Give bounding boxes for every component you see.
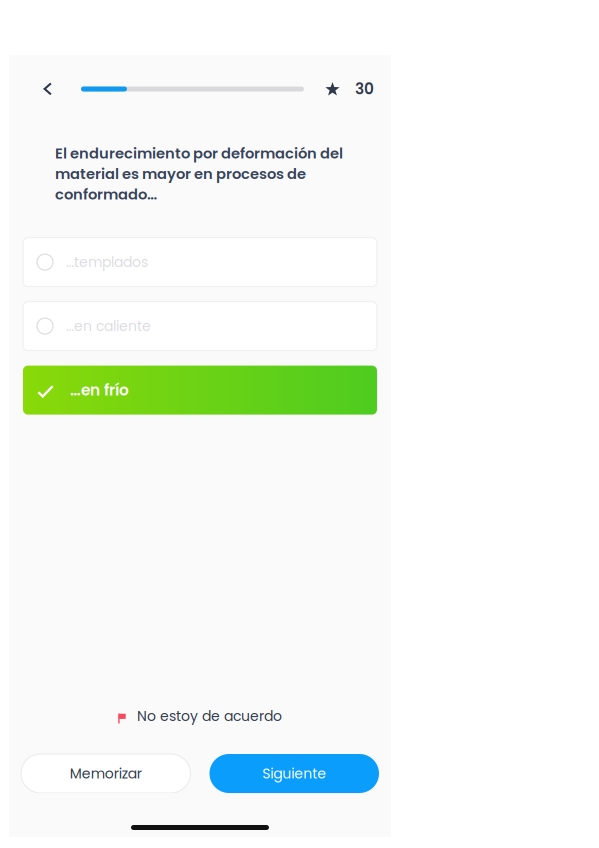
button[interactable]: Back bbox=[35, 76, 61, 102]
button[interactable]: …en caliente bbox=[23, 302, 377, 351]
button[interactable]: Memorizar bbox=[21, 754, 190, 793]
staticText: Siguiente bbox=[262, 764, 326, 783]
staticText: El endurecimiento por deformación del ma… bbox=[55, 143, 343, 205]
staticText: …en frío bbox=[70, 379, 129, 401]
button[interactable]: …en frío bbox=[23, 366, 377, 415]
staticText: 30 bbox=[355, 78, 374, 100]
staticText: …en caliente bbox=[66, 316, 151, 336]
button[interactable]: …templados bbox=[23, 238, 377, 287]
button[interactable]: Siguiente bbox=[209, 754, 379, 793]
staticText: …templados bbox=[66, 252, 148, 272]
button[interactable]: No estoy de acuerdo bbox=[110, 702, 290, 732]
staticText: No estoy de acuerdo bbox=[137, 706, 282, 726]
staticText: Memorizar bbox=[70, 764, 142, 783]
